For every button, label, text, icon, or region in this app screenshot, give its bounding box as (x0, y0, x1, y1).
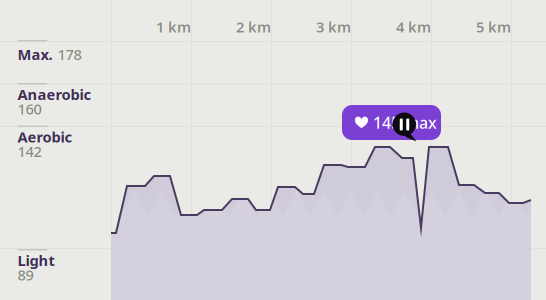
staticText: 178 (57, 44, 81, 64)
staticText: 142 (17, 141, 41, 161)
staticText: 5 km (476, 17, 511, 36)
staticText: Max. (17, 44, 52, 64)
staticText: 89 (17, 265, 33, 284)
staticText: 3 km (316, 17, 351, 36)
staticText: Light (17, 250, 54, 270)
staticText: Aerobic (17, 127, 72, 146)
staticText: 160 (17, 99, 41, 118)
button[interactable]: 145 max (342, 105, 441, 140)
staticText: 145 max (373, 112, 437, 133)
staticText: 2 km (236, 17, 271, 36)
staticText: 4 km (396, 17, 431, 36)
staticText: 1 km (156, 17, 191, 36)
button[interactable]: Pause (392, 112, 418, 142)
staticText: Anaerobic (17, 84, 91, 104)
